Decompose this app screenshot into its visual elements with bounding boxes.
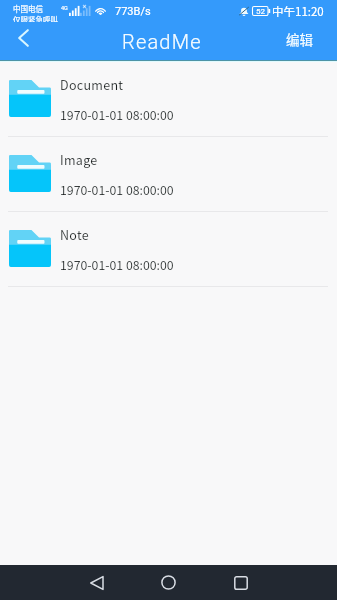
staticText: 编辑 [286, 29, 313, 49]
staticText: 仅限紧急呼叫 [13, 14, 58, 22]
staticText: Note [60, 225, 90, 243]
button[interactable]: Note [0, 212, 337, 287]
staticText: ReadMe [122, 30, 202, 53]
staticText: 52 [256, 7, 265, 16]
button[interactable]: Document [0, 62, 337, 137]
staticText: 中国电信 [13, 3, 43, 14]
staticText: 中午11:20 [272, 3, 324, 20]
staticText: Document [60, 75, 124, 93]
button[interactable]: Home [140, 565, 197, 600]
button[interactable]: Image [0, 137, 337, 212]
button[interactable]: Back [0, 22, 46, 60]
staticText: Image [60, 150, 98, 168]
staticText: 1970-01-01 08:00:00 [60, 181, 174, 199]
staticText: 1970-01-01 08:00:00 [60, 256, 174, 274]
staticText: 4G [61, 5, 68, 11]
button[interactable]: 编辑 [281, 22, 337, 60]
staticText: 773B/s [115, 5, 151, 18]
staticText: 1970-01-01 08:00:00 [60, 106, 174, 124]
button[interactable]: Recents [212, 565, 269, 600]
button[interactable]: Back [68, 565, 125, 600]
